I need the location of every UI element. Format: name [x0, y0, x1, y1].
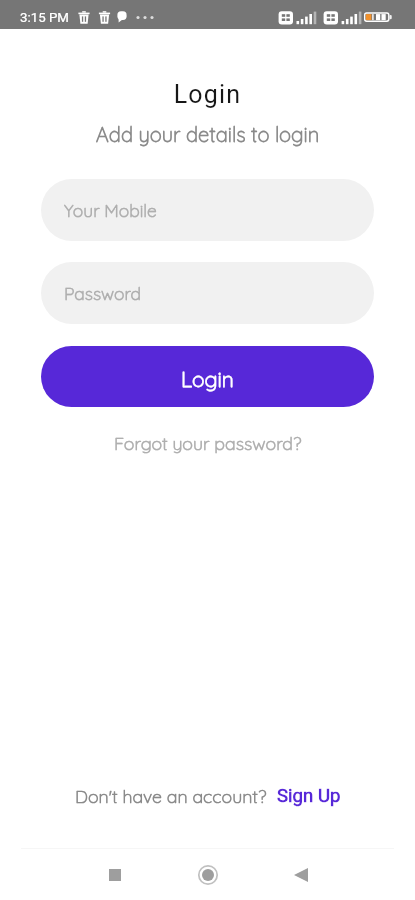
button[interactable]: Home: [184, 851, 232, 899]
staticText: Add your details to login: [0, 122, 415, 147]
staticText: Password: [64, 282, 142, 304]
button[interactable]: Sign Up: [277, 785, 341, 807]
staticText: Login: [0, 80, 415, 109]
staticText: Your Mobile: [64, 199, 157, 221]
button[interactable]: Your Mobile: [41, 179, 374, 241]
button[interactable]: Password: [41, 262, 374, 324]
button[interactable]: Recent apps: [91, 851, 139, 899]
button[interactable]: Login: [41, 346, 374, 407]
button[interactable]: Forgot your password?: [108, 430, 308, 456]
staticText: Don't have an account?: [75, 785, 267, 807]
staticText: 3:15 PM: [20, 10, 69, 26]
button[interactable]: Back: [277, 851, 325, 899]
staticText: Login: [181, 366, 234, 392]
